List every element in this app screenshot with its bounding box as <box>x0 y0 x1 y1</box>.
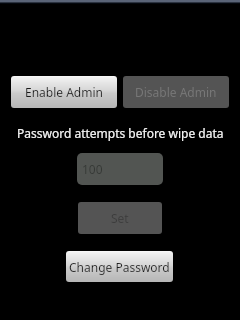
button[interactable]: Enable Admin <box>11 76 117 108</box>
button[interactable]: 100 <box>77 153 163 185</box>
button[interactable]: Disable Admin <box>123 76 229 108</box>
staticText: Change Password <box>69 259 170 275</box>
staticText: Enable Admin <box>25 84 103 100</box>
staticText: Set <box>111 210 129 226</box>
button[interactable]: Set <box>78 202 162 234</box>
staticText: Password attempts before wipe data <box>17 125 224 141</box>
staticText: Disable Admin <box>135 84 217 100</box>
staticText: 100 <box>82 161 103 177</box>
button[interactable]: Change Password <box>66 251 173 282</box>
